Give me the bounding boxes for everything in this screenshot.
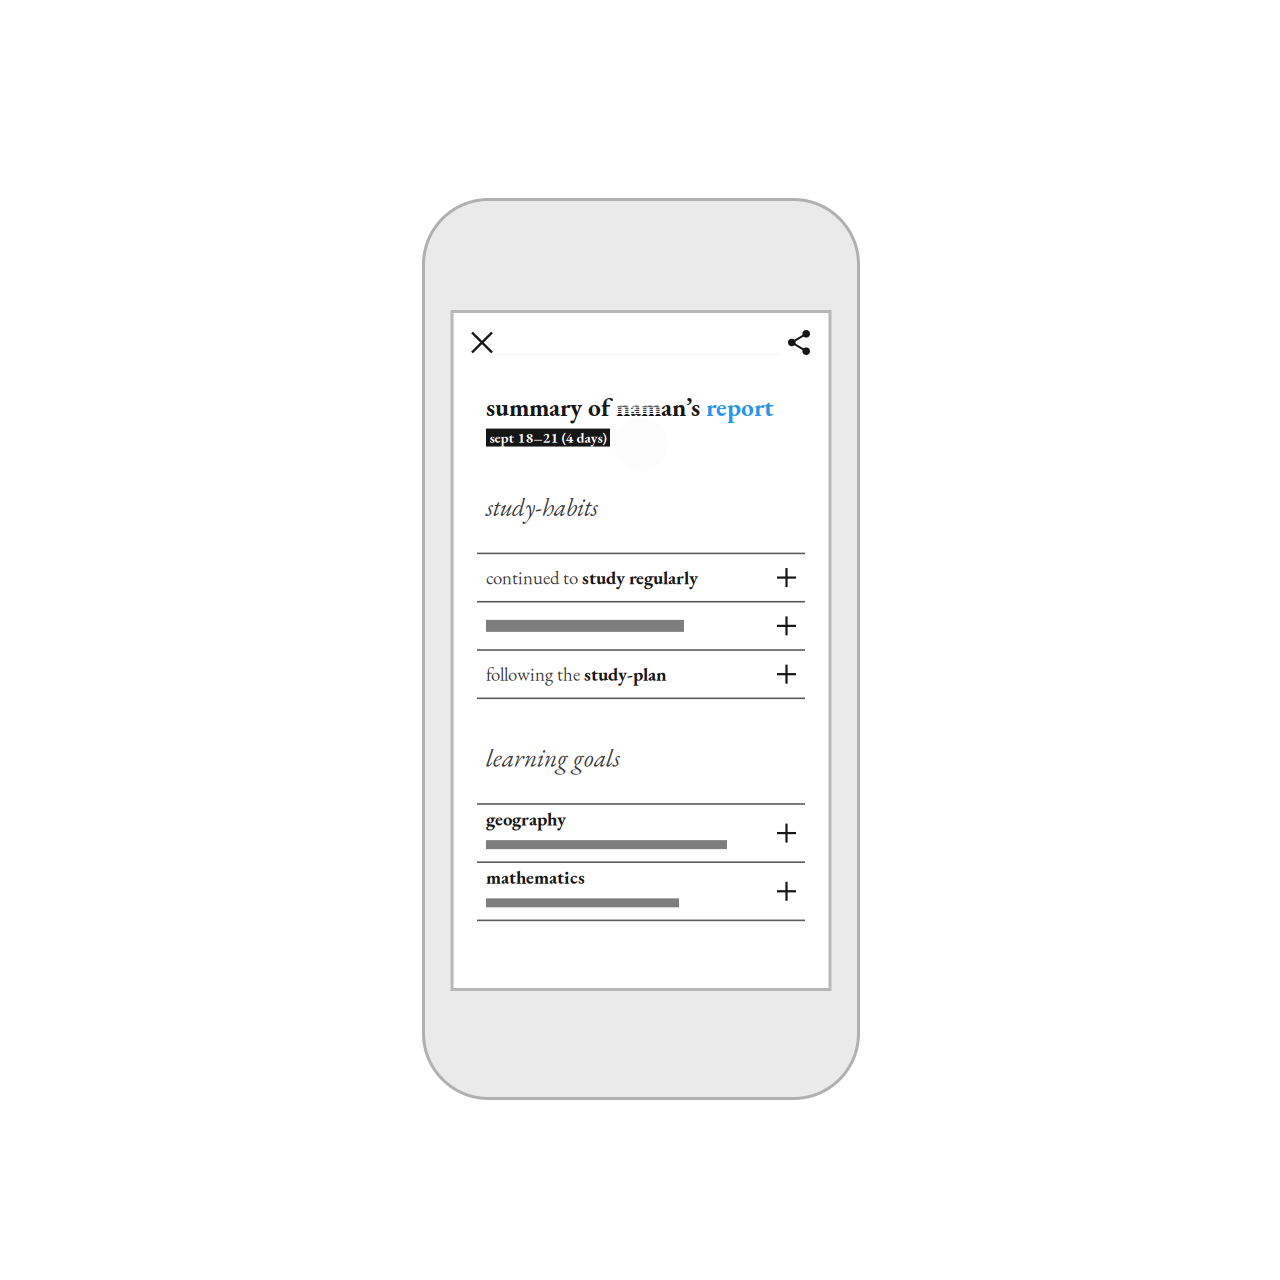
staticText: sept 18–21 (4 days) xyxy=(489,428,606,447)
staticText: mathematics xyxy=(486,865,585,889)
staticText: nam xyxy=(616,390,661,424)
staticText: following the xyxy=(486,662,584,686)
button[interactable]: following the xyxy=(477,651,805,697)
button[interactable]: geography xyxy=(477,805,805,861)
staticText: learning goals xyxy=(486,741,620,774)
staticText: study-habits xyxy=(486,491,598,524)
button[interactable]: continued to xyxy=(477,554,805,601)
staticText: study regularly xyxy=(582,565,698,590)
staticText: report xyxy=(706,390,774,424)
button[interactable] xyxy=(477,602,805,649)
staticText: continued to xyxy=(486,565,582,590)
staticText: an’s xyxy=(661,390,706,424)
button[interactable]: mathematics xyxy=(477,863,805,920)
button[interactable]: Close xyxy=(462,322,502,362)
staticText: summary of xyxy=(486,390,616,424)
staticText: geography xyxy=(486,807,566,831)
button[interactable]: Share xyxy=(779,322,819,362)
staticText: study-plan xyxy=(584,662,667,686)
